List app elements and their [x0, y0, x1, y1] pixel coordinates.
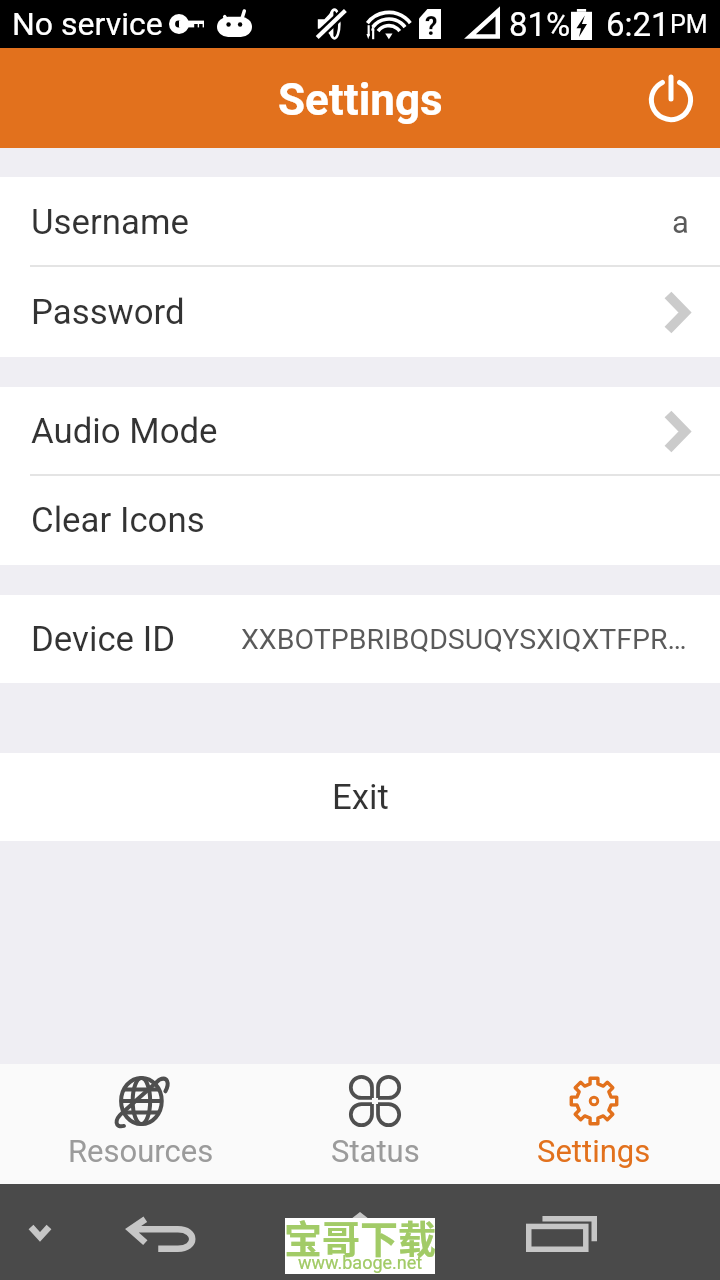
button[interactable]: Power off	[622, 48, 720, 148]
button[interactable]: Back	[121, 1202, 205, 1266]
staticText: No service	[12, 5, 163, 43]
staticText: Resources	[68, 1133, 214, 1169]
button[interactable]: Username	[0, 177, 720, 267]
button[interactable]: Settings	[468, 1064, 720, 1184]
button[interactable]: Password	[0, 267, 720, 357]
button[interactable]: Resources	[0, 1064, 282, 1184]
staticText: Clear Icons	[31, 500, 205, 541]
button[interactable]: Status	[282, 1064, 468, 1184]
staticText: 宝哥下载	[284, 1209, 437, 1264]
staticText: ?	[425, 12, 438, 41]
staticText: Settings	[537, 1133, 651, 1169]
button[interactable]: Exit	[0, 753, 720, 841]
staticText: XXBOTPBRIBQDSUQYSXIQXTFPR…	[241, 623, 687, 656]
staticText: Audio Mode	[31, 411, 218, 452]
staticText: www.baoge.net	[298, 1252, 423, 1273]
button[interactable]: Device ID	[0, 595, 720, 683]
button[interactable]: Hide keyboard	[8, 1200, 72, 1264]
button[interactable]: Clear Icons	[0, 476, 720, 565]
staticText: Password	[31, 292, 185, 333]
staticText: Exit	[332, 777, 389, 818]
staticText: 6:21	[606, 5, 670, 44]
button[interactable]: Home	[318, 1202, 402, 1266]
staticText: Settings	[278, 74, 443, 126]
staticText: a	[672, 204, 689, 240]
staticText: PM	[670, 10, 708, 39]
button[interactable]: Audio Mode	[0, 387, 720, 476]
staticText: 81%	[509, 5, 571, 44]
button[interactable]: Recent apps	[519, 1202, 603, 1266]
staticText: Status	[331, 1133, 420, 1169]
staticText: Device ID	[31, 619, 175, 660]
staticText: Username	[31, 202, 189, 243]
